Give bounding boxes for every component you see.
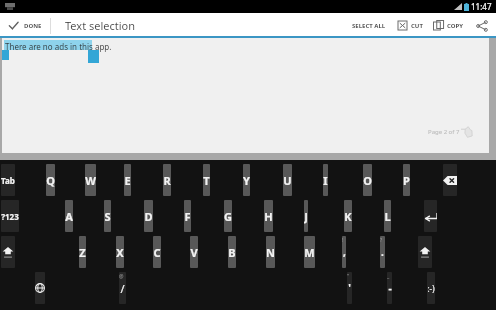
button[interactable]: Share (468, 13, 496, 38)
staticText: Z (79, 245, 86, 260)
button[interactable]: COPY (428, 13, 468, 38)
button[interactable]: Backspace (443, 164, 457, 196)
staticText: J (304, 209, 308, 224)
staticText: :-) (427, 283, 435, 294)
staticText: ? (380, 237, 383, 244)
staticText: , (343, 245, 346, 259)
button[interactable]: DONE (0, 13, 50, 38)
staticText: Text selection (65, 18, 136, 33)
staticText: N (266, 245, 275, 260)
staticText: G (224, 209, 232, 224)
button[interactable]: G (224, 200, 232, 232)
staticText: F (184, 209, 191, 224)
staticText: ' (348, 281, 351, 295)
button[interactable]: A (65, 200, 73, 232)
button[interactable]: Change language (35, 272, 45, 304)
button[interactable]: T (203, 164, 210, 196)
staticText: . (381, 245, 384, 259)
button[interactable]: C (153, 236, 161, 268)
staticText: P (403, 173, 410, 188)
staticText: SELECT ALL (352, 22, 386, 30)
button[interactable]: N (266, 236, 275, 268)
staticText: Page 2 of 7 (428, 128, 460, 136)
button[interactable]: Z (79, 236, 86, 268)
staticText: D (144, 209, 153, 224)
staticText: ! (342, 237, 344, 244)
button[interactable]: _ (387, 272, 392, 304)
button[interactable]: L (384, 200, 391, 232)
button[interactable]: R (163, 164, 171, 196)
button[interactable]: W (85, 164, 96, 196)
button[interactable]: Shift (1, 236, 15, 268)
button[interactable]: ?123 (1, 200, 19, 232)
button[interactable]: Enter (424, 200, 437, 232)
button[interactable]: B (228, 236, 236, 268)
button[interactable]: D (144, 200, 153, 232)
button[interactable]: I (323, 164, 328, 196)
button[interactable]: M (304, 236, 315, 268)
staticText: X (116, 245, 124, 260)
staticText: Tab (1, 175, 15, 186)
button[interactable]: K (344, 200, 352, 232)
staticText: DONE (24, 22, 42, 30)
button[interactable]: SELECT ALL (346, 13, 392, 38)
button[interactable]: There are no ads in this app. (2, 38, 489, 153)
staticText: L (384, 209, 391, 224)
staticText: There are no ads in this app. (5, 41, 112, 52)
staticText: E (124, 173, 131, 188)
staticText: Y (243, 173, 250, 188)
button[interactable]: S (104, 200, 111, 232)
button[interactable]: F (184, 200, 191, 232)
staticText: V (190, 245, 198, 260)
button[interactable]: Shift (418, 236, 432, 268)
button[interactable]: Q (46, 164, 55, 196)
staticText: W (85, 173, 96, 188)
staticText: M (304, 245, 315, 260)
button[interactable]: U (283, 164, 292, 196)
staticText: A (65, 209, 73, 224)
staticText: K (344, 209, 352, 224)
staticText: B (228, 245, 236, 260)
button[interactable]: X (116, 236, 124, 268)
button[interactable]: O (363, 164, 372, 196)
staticText: 11:47 (471, 1, 492, 12)
staticText: ?123 (1, 211, 19, 222)
staticText: COPY (447, 22, 463, 30)
staticText: Q (46, 173, 55, 188)
staticText: H (264, 209, 273, 224)
staticText: " (347, 273, 350, 280)
staticText: T (203, 173, 210, 188)
button[interactable]: H (264, 200, 273, 232)
staticText: I (323, 173, 328, 188)
button[interactable]: ? (380, 236, 385, 268)
button[interactable]: ! (342, 236, 346, 268)
staticText: U (283, 173, 292, 188)
staticText: - (388, 281, 392, 295)
staticText: _ (387, 273, 390, 280)
button[interactable]: V (190, 236, 198, 268)
button[interactable]: @ (119, 272, 126, 304)
staticText: CUT (411, 22, 423, 30)
staticText: O (363, 173, 372, 188)
staticText: C (153, 245, 161, 260)
staticText: S (104, 209, 111, 224)
button[interactable]: Y (243, 164, 250, 196)
staticText: @ (119, 273, 124, 280)
button[interactable]: Tab (1, 164, 15, 196)
staticText: / (120, 281, 125, 296)
button[interactable]: P (403, 164, 410, 196)
button[interactable]: :-) (427, 272, 435, 304)
button[interactable]: E (124, 164, 131, 196)
button[interactable]: " (347, 272, 352, 304)
staticText: R (163, 173, 171, 188)
button[interactable]: CUT (392, 13, 428, 38)
button[interactable]: J (304, 200, 308, 232)
